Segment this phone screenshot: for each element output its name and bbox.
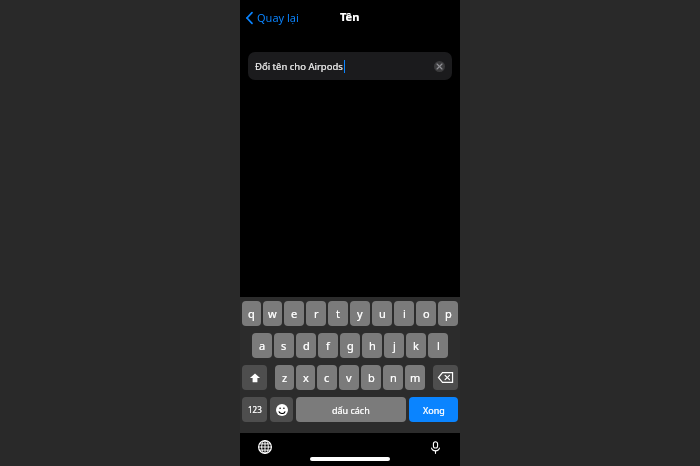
staticText: 123 xyxy=(248,404,262,415)
staticText: k xyxy=(413,338,419,353)
button[interactable]: Backspace xyxy=(433,365,458,390)
staticText: z xyxy=(282,370,288,385)
staticText: b xyxy=(368,370,375,385)
button[interactable]: r xyxy=(306,301,326,326)
button[interactable]: g xyxy=(340,333,360,358)
staticText: dấu cách xyxy=(332,404,370,416)
staticText: Tên xyxy=(340,9,360,24)
staticText: y xyxy=(357,306,363,321)
staticText: r xyxy=(314,306,319,321)
button[interactable]: h xyxy=(362,333,382,358)
button[interactable]: dấu cách xyxy=(296,397,406,422)
button[interactable]: Change keyboard language xyxy=(255,437,275,457)
button[interactable]: Quay lại xyxy=(242,6,302,29)
button[interactable]: c xyxy=(317,365,337,390)
button[interactable]: v xyxy=(339,365,359,390)
button[interactable]: y xyxy=(350,301,370,326)
staticText: s xyxy=(281,338,287,353)
button[interactable]: w xyxy=(263,301,282,326)
button[interactable]: o xyxy=(416,301,436,326)
staticText: o xyxy=(423,306,430,321)
staticText: g xyxy=(347,338,354,353)
button[interactable]: k xyxy=(406,333,426,358)
button[interactable]: m xyxy=(405,365,425,390)
staticText: w xyxy=(268,306,277,321)
button[interactable]: l xyxy=(428,333,448,358)
staticText: Đổi tên cho Airpods xyxy=(255,60,343,73)
staticText: m xyxy=(410,370,421,385)
button[interactable]: 123 xyxy=(242,397,267,422)
staticText: v xyxy=(346,370,352,385)
staticText: f xyxy=(326,338,330,353)
staticText: t xyxy=(336,306,340,321)
button[interactable]: Đổi tên cho Airpods xyxy=(248,52,452,80)
button[interactable]: Shift xyxy=(242,365,267,390)
button[interactable]: x xyxy=(296,365,315,390)
staticText: j xyxy=(393,338,396,353)
button[interactable]: n xyxy=(383,365,403,390)
button[interactable]: t xyxy=(328,301,348,326)
button[interactable]: i xyxy=(394,301,414,326)
staticText: d xyxy=(303,338,310,353)
button[interactable]: p xyxy=(438,301,458,326)
staticText: p xyxy=(445,306,452,321)
button[interactable]: Clear text xyxy=(434,61,445,72)
staticText: Xong xyxy=(423,404,445,416)
button[interactable]: j xyxy=(384,333,404,358)
staticText: n xyxy=(390,370,397,385)
button[interactable]: Xong xyxy=(409,397,458,422)
button[interactable]: s xyxy=(274,333,294,358)
staticText: e xyxy=(291,306,298,321)
button[interactable]: q xyxy=(242,301,261,326)
staticText: i xyxy=(403,306,406,321)
button[interactable]: b xyxy=(361,365,381,390)
button[interactable]: Dictation xyxy=(425,437,445,457)
button[interactable]: u xyxy=(372,301,392,326)
button[interactable]: d xyxy=(296,333,316,358)
button[interactable]: a xyxy=(252,333,272,358)
staticText: c xyxy=(324,370,330,385)
staticText: x xyxy=(303,370,309,385)
button[interactable]: f xyxy=(318,333,338,358)
button[interactable]: e xyxy=(284,301,304,326)
staticText: a xyxy=(259,338,266,353)
button[interactable]: Emoji xyxy=(270,397,293,422)
button[interactable]: z xyxy=(275,365,294,390)
staticText: q xyxy=(248,306,255,321)
staticText: u xyxy=(379,306,386,321)
staticText: l xyxy=(437,338,440,353)
staticText: h xyxy=(369,338,376,353)
staticText: Quay lại xyxy=(257,10,299,25)
